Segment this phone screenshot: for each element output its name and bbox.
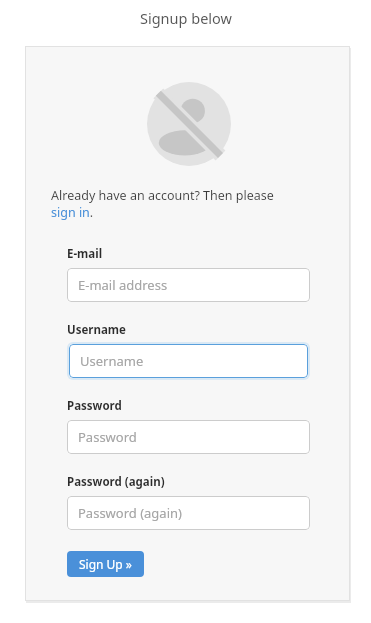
button[interactable]: Username [69, 344, 308, 378]
button[interactable]: Password [67, 420, 310, 454]
staticText: E-mail [67, 246, 103, 262]
staticText: Password [67, 398, 122, 414]
staticText: Sign Up » [79, 556, 132, 572]
staticText: Password [78, 428, 137, 446]
button[interactable]: Password (again) [67, 496, 310, 530]
staticText: Already have an account? Then please sig… [51, 187, 294, 221]
button[interactable]: E-mail address [67, 268, 310, 302]
button[interactable]: Sign Up » [67, 551, 144, 577]
staticText: Username [80, 352, 144, 370]
button[interactable]: Already have an account? Then please sig… [51, 187, 294, 221]
staticText: Username [67, 322, 126, 338]
staticText: Signup below [140, 8, 232, 28]
staticText: Password (again) [78, 504, 182, 522]
staticText: E-mail address [78, 276, 168, 294]
staticText: Password (again) [67, 474, 165, 490]
